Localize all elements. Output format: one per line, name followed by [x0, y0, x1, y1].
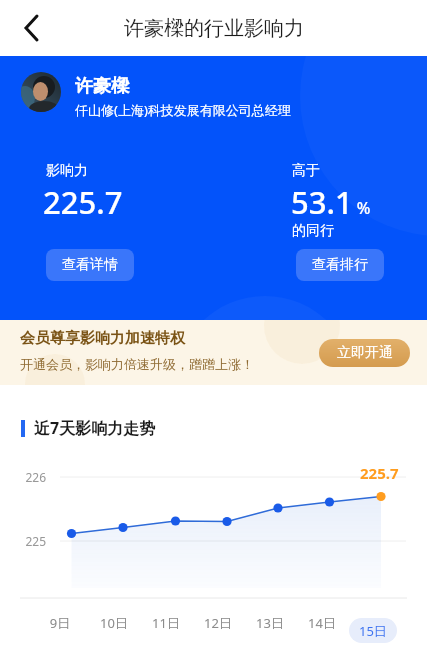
staticText: 9日	[34, 614, 86, 632]
button[interactable]: 查看排行	[296, 249, 384, 281]
staticText: 13日	[244, 614, 296, 632]
staticText: 53.1 %	[291, 181, 371, 223]
button[interactable]	[10, 8, 48, 46]
staticText: 12日	[192, 614, 244, 632]
staticText: 立即开通	[337, 344, 393, 362]
button[interactable]: 立即开通	[319, 339, 410, 367]
staticText: 高于	[292, 162, 320, 180]
staticText: 225	[22, 533, 46, 549]
staticText: 近7天影响力走势	[34, 417, 156, 439]
staticText: 10日	[88, 614, 140, 632]
staticText: 15日	[359, 622, 387, 640]
staticText: 开通会员，影响力倍速升级，蹭蹭上涨！	[20, 356, 254, 372]
staticText: 会员尊享影响力加速特权	[20, 329, 185, 348]
button[interactable]: 15日	[349, 618, 397, 643]
staticText: 许豪樑	[75, 75, 129, 98]
staticText: 225.7	[360, 463, 399, 483]
staticText: 14日	[296, 614, 348, 632]
staticText: 许豪樑的行业影响力	[124, 16, 304, 41]
staticText: 影响力	[46, 162, 88, 180]
button[interactable]: 查看详情	[46, 249, 134, 281]
button[interactable]	[21, 72, 61, 112]
staticText: 225.7	[43, 181, 123, 223]
staticText: 查看排行	[312, 256, 368, 274]
staticText: 仟山修(上海)科技发展有限公司总经理	[75, 101, 291, 119]
staticText: 11日	[140, 614, 192, 632]
staticText: 查看详情	[62, 256, 118, 274]
staticText: 的同行	[292, 222, 334, 240]
staticText: 226	[22, 469, 46, 485]
